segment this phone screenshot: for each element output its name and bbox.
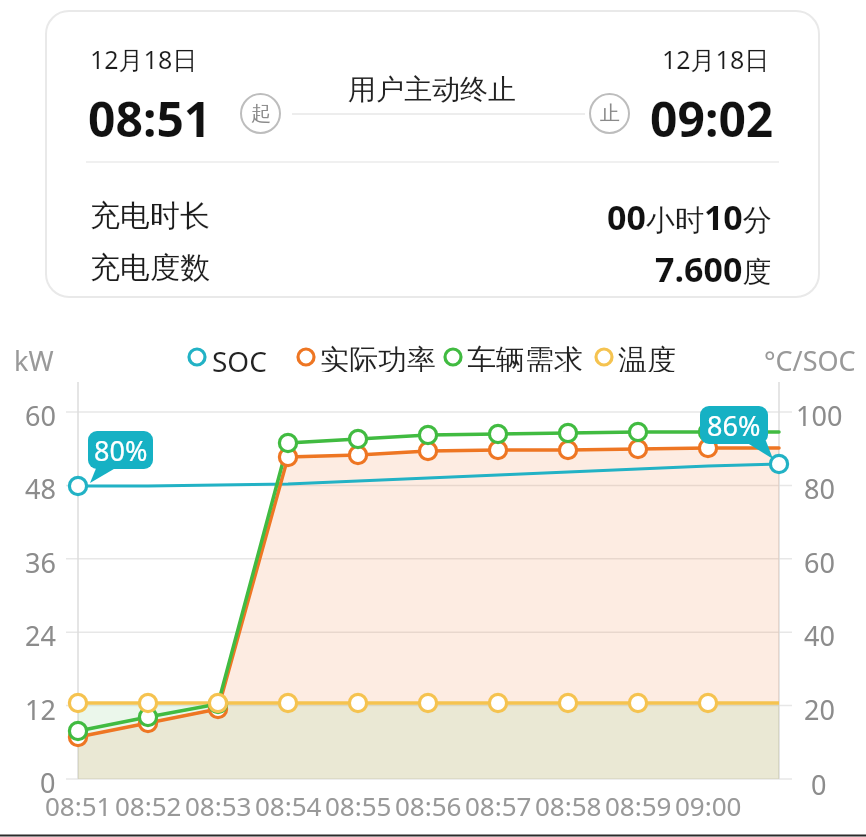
staticText: 40	[804, 617, 835, 647]
staticText: 86%	[707, 407, 761, 444]
staticText: 用户主动终止	[348, 72, 516, 107]
staticText: 36	[25, 544, 56, 574]
staticText: 08:55	[325, 788, 392, 816]
staticText: 00小时10分	[607, 194, 772, 238]
staticText: 充电度数	[90, 249, 210, 287]
staticText: SOC	[212, 342, 267, 372]
staticText: 充电时长	[90, 197, 210, 235]
staticText: 12	[25, 691, 56, 721]
button[interactable]	[185, 340, 280, 374]
staticText: kW	[14, 342, 54, 372]
staticText: 08:54	[255, 788, 322, 816]
staticText: 100	[796, 397, 843, 427]
staticText: 08:57	[465, 788, 532, 816]
staticText: 09:00	[675, 788, 742, 816]
staticText: 08:52	[115, 788, 182, 816]
staticText: 08:53	[185, 788, 252, 816]
staticText: 08:51	[45, 788, 112, 816]
staticText: 0	[811, 766, 827, 796]
staticText: 08:51	[88, 86, 212, 140]
button[interactable]	[45, 10, 820, 298]
staticText: 60	[804, 544, 835, 574]
staticText: 60	[25, 397, 56, 427]
staticText: 08:59	[605, 788, 672, 816]
staticText: 7.600度	[655, 246, 772, 290]
staticText: °C/SOC	[764, 342, 856, 372]
staticText: 24	[25, 617, 56, 647]
staticText: 08:56	[395, 788, 462, 816]
staticText: 20	[804, 691, 835, 721]
staticText: 80%	[94, 432, 148, 469]
staticText: 80	[804, 470, 835, 500]
staticText: 12月18日	[90, 42, 198, 76]
staticText: 48	[25, 470, 56, 500]
staticText: 止	[600, 101, 620, 126]
staticText: 09:02	[650, 86, 774, 140]
staticText: 温度	[618, 342, 676, 372]
staticText: 实际功率	[320, 342, 436, 372]
staticText: 0	[40, 764, 56, 794]
staticText: 08:58	[535, 788, 602, 816]
staticText: 12月18日	[662, 42, 770, 76]
staticText: 起	[251, 101, 271, 126]
staticText: 车辆需求	[467, 342, 583, 372]
